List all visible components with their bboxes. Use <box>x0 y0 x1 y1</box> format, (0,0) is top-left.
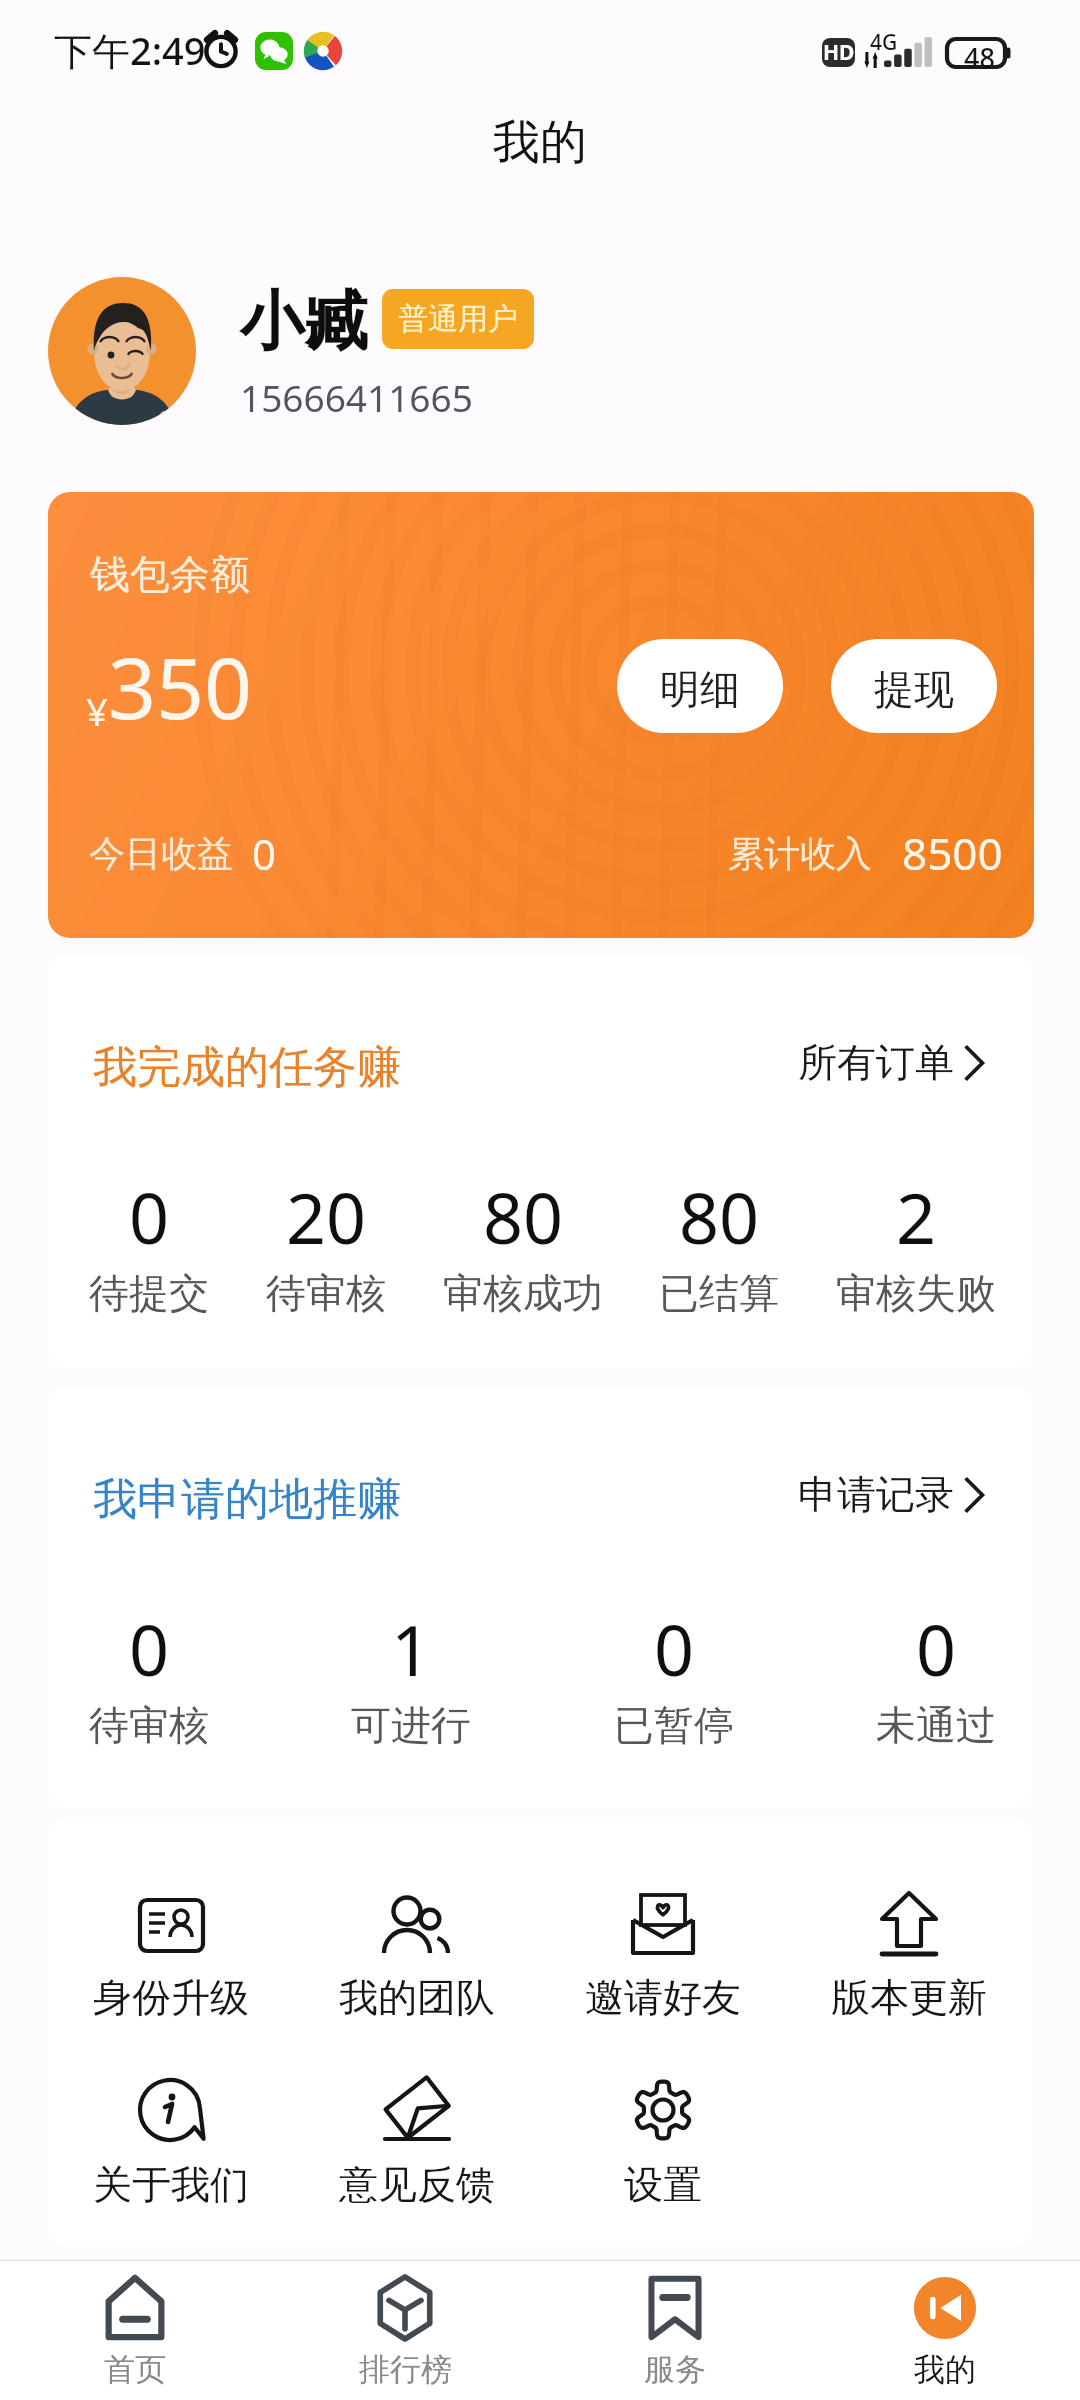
staticText: 审核成功 <box>443 1268 603 1318</box>
staticText: 意见反馈 <box>339 2160 495 2209</box>
button[interactable]: 0 <box>89 1169 209 1318</box>
staticText: 0 <box>916 1601 957 1696</box>
staticText: 可进行 <box>351 1700 471 1750</box>
staticText: 待审核 <box>89 1700 209 1750</box>
staticText: 80 <box>483 1169 564 1264</box>
button[interactable]: 身份升级 <box>48 1892 294 2022</box>
button[interactable]: 我的团队 <box>294 1892 540 2022</box>
button[interactable]: 0 <box>89 1601 209 1750</box>
button[interactable]: 用户资料 <box>48 277 534 425</box>
button[interactable]: 排行榜 <box>270 2261 540 2400</box>
staticText: 350 <box>108 629 253 743</box>
staticText: 8500 <box>902 823 1003 883</box>
button[interactable]: 80 <box>443 1169 603 1318</box>
staticText: 15666411665 <box>240 372 473 422</box>
button[interactable]: 我的 <box>810 2261 1080 2400</box>
staticText: 首页 <box>104 2350 166 2389</box>
staticText: 未通过 <box>876 1700 996 1750</box>
staticText: ¥ <box>86 685 108 737</box>
staticText: 所有订单 <box>798 1038 954 1087</box>
staticText: 审核失败 <box>836 1268 996 1318</box>
staticText: 申请记录 <box>798 1470 954 1519</box>
button[interactable]: 所有订单 <box>798 1038 985 1087</box>
button[interactable]: 20 <box>266 1169 386 1318</box>
staticText: 关于我们 <box>93 2160 249 2209</box>
staticText: 明细 <box>660 664 740 714</box>
staticText: 48 <box>964 39 995 76</box>
staticText: 钱包余额 <box>90 549 250 599</box>
staticText: 设置 <box>624 2160 702 2209</box>
button[interactable]: 2 <box>836 1169 996 1318</box>
button[interactable]: 意见反馈 <box>294 2079 540 2209</box>
staticText: 4G <box>870 28 898 57</box>
button[interactable]: 0 <box>614 1601 734 1750</box>
staticText: 排行榜 <box>359 2350 452 2389</box>
staticText: 0 <box>252 825 277 882</box>
staticText: 小臧 <box>240 281 368 362</box>
button[interactable]: 0 <box>876 1601 996 1750</box>
staticText: 服务 <box>644 2350 706 2389</box>
staticText: 累计收入 <box>728 831 872 876</box>
staticText: 我的团队 <box>339 1973 495 2022</box>
staticText: 今日收益 <box>89 831 233 876</box>
staticText: 0 <box>654 1601 695 1696</box>
staticText: 已暂停 <box>614 1700 734 1750</box>
button[interactable]: 申请记录 <box>798 1470 985 1519</box>
staticText: 下午2:49 <box>54 24 206 76</box>
staticText: HD <box>823 38 855 67</box>
staticText: 我的 <box>493 113 587 172</box>
staticText: 80 <box>679 1169 760 1264</box>
button[interactable]: 钱包余额卡片 <box>48 492 1034 938</box>
button[interactable]: 设置 <box>540 2079 786 2209</box>
staticText: 0 <box>129 1601 170 1696</box>
button[interactable]: 关于我们 <box>48 2079 294 2209</box>
button[interactable]: 版本更新 <box>786 1892 1032 2022</box>
staticText: 我完成的任务赚 <box>93 1040 401 1095</box>
button[interactable]: 邀请好友 <box>540 1892 786 2022</box>
staticText: 普通用户 <box>398 300 518 338</box>
staticText: 邀请好友 <box>585 1973 741 2022</box>
staticText: 我申请的地推赚 <box>93 1472 401 1527</box>
staticText: 1 <box>391 1601 432 1696</box>
staticText: 我的 <box>914 2350 976 2389</box>
staticText: 0 <box>129 1169 170 1264</box>
button[interactable]: 提现 <box>831 639 997 733</box>
staticText: 版本更新 <box>831 1973 987 2022</box>
staticText: 待审核 <box>266 1268 386 1318</box>
staticText: 已结算 <box>659 1268 779 1318</box>
button[interactable]: 1 <box>351 1601 471 1750</box>
staticText: 待提交 <box>89 1268 209 1318</box>
staticText: 2 <box>896 1169 937 1264</box>
staticText: 提现 <box>874 664 954 714</box>
button[interactable]: 首页 <box>0 2261 270 2400</box>
staticText: 身份升级 <box>93 1973 249 2022</box>
button[interactable]: 明细 <box>617 639 783 733</box>
button[interactable]: 80 <box>659 1169 779 1318</box>
staticText: 20 <box>286 1169 367 1264</box>
button[interactable]: 服务 <box>540 2261 810 2400</box>
